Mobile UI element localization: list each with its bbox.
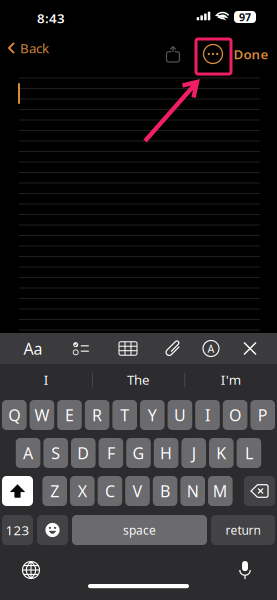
- button[interactable]: U: [168, 400, 192, 430]
- staticText: G: [132, 442, 144, 464]
- button[interactable]: T: [112, 400, 137, 430]
- button[interactable]: Done: [229, 40, 273, 68]
- button[interactable]: A: [16, 438, 40, 468]
- button[interactable]: Emoji: [37, 515, 68, 545]
- button[interactable]: N: [180, 476, 205, 506]
- staticText: M: [213, 480, 228, 502]
- staticText: R: [92, 404, 102, 426]
- button[interactable]: Table: [108, 333, 148, 364]
- button[interactable]: I'm: [185, 364, 277, 395]
- button[interactable]: H: [154, 438, 178, 468]
- staticText: 123: [5, 521, 29, 539]
- staticText: Done: [233, 45, 268, 63]
- staticText: Z: [50, 480, 59, 502]
- staticText: I: [205, 404, 210, 426]
- button[interactable]: P: [250, 400, 275, 430]
- button[interactable]: Back: [0, 34, 66, 62]
- staticText: E: [65, 404, 74, 426]
- button[interactable]: F: [99, 438, 123, 468]
- staticText: A: [23, 442, 33, 464]
- button[interactable]: return: [211, 515, 275, 545]
- staticText: Q: [8, 404, 20, 426]
- button[interactable]: Close formatting: [233, 333, 267, 364]
- button[interactable]: E: [57, 400, 82, 430]
- staticText: W: [34, 404, 49, 426]
- staticText: 8:43: [37, 9, 65, 27]
- button[interactable]: More options: [198, 40, 228, 68]
- button[interactable]: S: [43, 438, 68, 468]
- button[interactable]: J: [181, 438, 206, 468]
- button[interactable]: Delete: [244, 476, 275, 506]
- button[interactable]: G: [126, 438, 151, 468]
- button[interactable]: Shift: [2, 476, 33, 506]
- button[interactable]: Attach: [153, 333, 193, 364]
- button[interactable]: V: [125, 476, 150, 506]
- button[interactable]: X: [70, 476, 95, 506]
- staticText: O: [229, 404, 241, 426]
- button[interactable]: I: [195, 400, 220, 430]
- button[interactable]: 123: [2, 515, 33, 545]
- staticText: I: [44, 371, 49, 388]
- button[interactable]: Markup: [191, 333, 231, 364]
- button[interactable]: Share: [158, 40, 188, 68]
- staticText: F: [107, 442, 115, 464]
- button[interactable]: Y: [140, 400, 165, 430]
- staticText: I'm: [221, 371, 241, 388]
- button[interactable]: Aa: [13, 333, 53, 364]
- button[interactable]: L: [237, 438, 261, 468]
- staticText: The: [127, 371, 150, 388]
- staticText: S: [51, 442, 60, 464]
- button[interactable]: Checklist: [61, 333, 101, 364]
- staticText: space: [123, 522, 156, 538]
- button[interactable]: K: [209, 438, 234, 468]
- button[interactable]: I: [0, 364, 92, 395]
- button[interactable]: D: [71, 438, 96, 468]
- staticText: A: [207, 341, 214, 356]
- staticText: 97: [239, 10, 251, 24]
- button[interactable]: W: [30, 400, 54, 430]
- staticText: Back: [20, 39, 49, 57]
- staticText: U: [174, 404, 186, 426]
- staticText: L: [245, 442, 253, 464]
- button[interactable]: B: [153, 476, 177, 506]
- button[interactable]: M: [208, 476, 233, 506]
- staticText: X: [78, 480, 87, 502]
- button[interactable]: Next keyboard: [13, 552, 49, 588]
- staticText: D: [77, 442, 89, 464]
- staticText: T: [120, 404, 129, 426]
- button[interactable]: O: [223, 400, 247, 430]
- staticText: return: [225, 522, 260, 538]
- staticText: Y: [148, 404, 157, 426]
- button[interactable]: Z: [42, 476, 67, 506]
- staticText: Aa: [23, 338, 42, 359]
- button[interactable]: The: [92, 364, 185, 395]
- staticText: H: [160, 442, 172, 464]
- staticText: C: [105, 480, 115, 502]
- staticText: N: [187, 480, 199, 502]
- staticText: K: [216, 442, 226, 464]
- button[interactable]: R: [85, 400, 109, 430]
- button[interactable]: Q: [2, 400, 27, 430]
- staticText: B: [160, 480, 170, 502]
- staticText: V: [132, 480, 142, 502]
- staticText: J: [192, 442, 196, 464]
- button[interactable]: Dictate: [227, 552, 263, 588]
- staticText: P: [258, 404, 268, 426]
- button[interactable]: C: [98, 476, 122, 506]
- button[interactable]: space: [72, 515, 207, 545]
